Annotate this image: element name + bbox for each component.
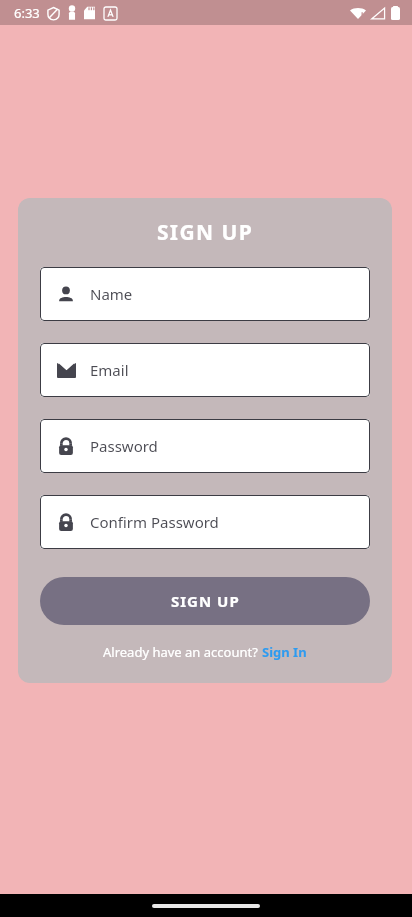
button[interactable]: Name xyxy=(40,267,370,321)
staticText: 6:33 xyxy=(14,4,40,22)
staticText: Password xyxy=(90,436,158,456)
staticText: SIGN UP xyxy=(40,218,370,247)
staticText: Name xyxy=(90,284,133,304)
staticText: Sign In xyxy=(262,643,307,661)
staticText: Email xyxy=(90,360,129,380)
button[interactable]: Email xyxy=(40,343,370,397)
button[interactable]: SIGN UP xyxy=(40,577,370,625)
staticText: SIGN UP xyxy=(171,591,240,611)
button[interactable]: Confirm Password xyxy=(40,495,370,549)
button[interactable]: Already have an account? xyxy=(40,643,370,661)
staticText: Already have an account? xyxy=(103,643,262,661)
button[interactable]: Password xyxy=(40,419,370,473)
staticText: Confirm Password xyxy=(90,512,219,532)
